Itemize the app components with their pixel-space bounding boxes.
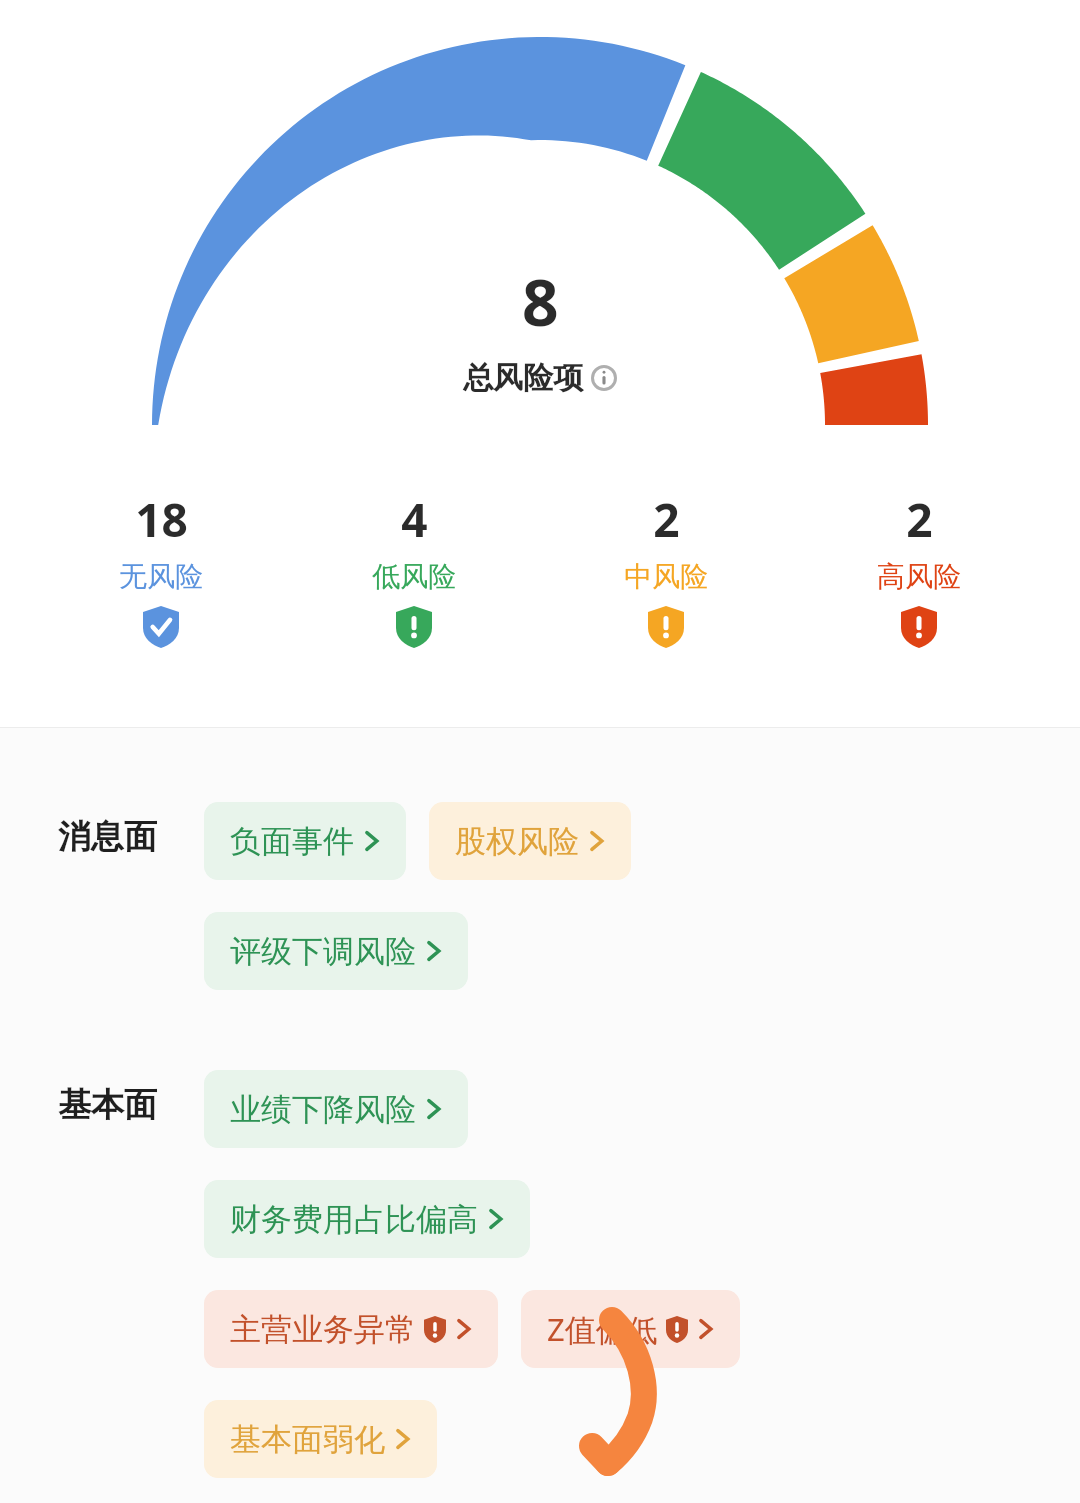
button[interactable]: Z值偏低: [521, 1290, 740, 1368]
staticText: Z值偏低: [547, 1308, 658, 1350]
staticText: 2: [653, 488, 680, 551]
button[interactable]: 2: [854, 488, 984, 648]
button[interactable]: 评级下调风险: [204, 912, 468, 990]
button[interactable]: 基本面弱化: [204, 1400, 437, 1478]
staticText: 负面事件: [230, 822, 354, 861]
staticText: 股权风险: [455, 822, 579, 861]
staticText: 评级下调风险: [230, 932, 416, 971]
button[interactable]: 股权风险: [429, 802, 631, 880]
staticText: 业绩下降风险: [230, 1090, 416, 1129]
button[interactable]: 4: [349, 488, 479, 648]
staticText: 财务费用占比偏高: [230, 1200, 478, 1239]
staticText: 4: [401, 488, 428, 551]
staticText: 基本面: [58, 1084, 157, 1126]
staticText: 总风险项: [463, 359, 583, 397]
staticText: 消息面: [58, 816, 157, 858]
button[interactable]: 业绩下降风险: [204, 1070, 468, 1148]
staticText: 基本面弱化: [230, 1420, 385, 1459]
button[interactable]: 说明: [591, 365, 617, 391]
staticText: 主营业务异常: [230, 1310, 416, 1349]
staticText: 8: [522, 258, 559, 345]
staticText: 2: [906, 488, 933, 551]
button[interactable]: 财务费用占比偏高: [204, 1180, 530, 1258]
button[interactable]: 2: [601, 488, 731, 648]
staticText: 18: [135, 488, 188, 551]
button[interactable]: 18: [96, 488, 226, 648]
staticText: 低风险: [372, 559, 456, 594]
staticText: 中风险: [624, 559, 708, 594]
button[interactable]: 负面事件: [204, 802, 406, 880]
staticText: 高风险: [877, 559, 961, 594]
staticText: 无风险: [119, 559, 203, 594]
button[interactable]: 主营业务异常: [204, 1290, 498, 1368]
